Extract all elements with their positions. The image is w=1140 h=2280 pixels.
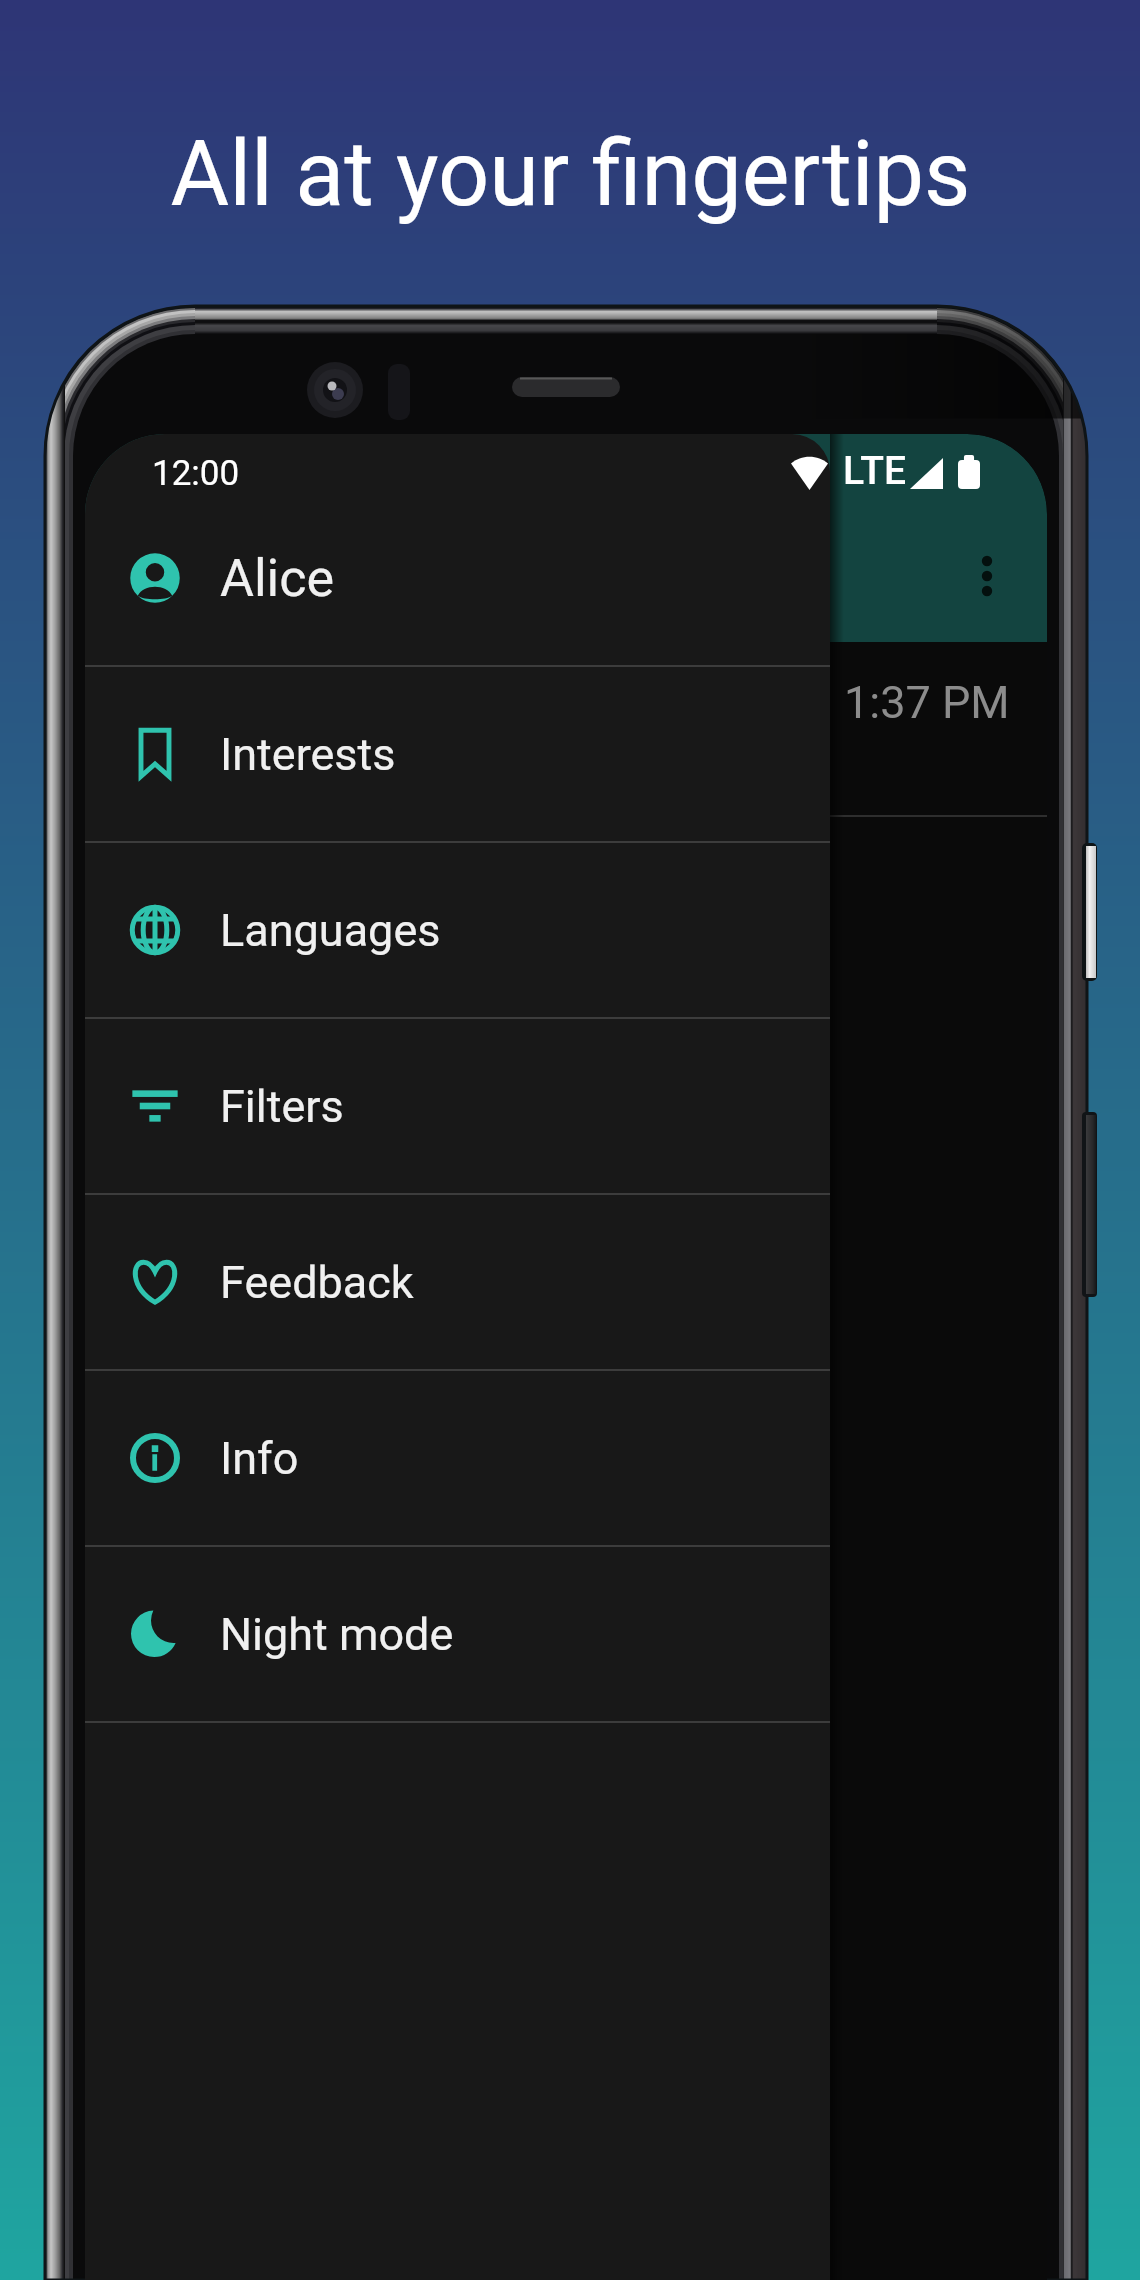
staticText: Languages — [220, 904, 441, 957]
staticText: Feedback — [220, 1256, 414, 1309]
button[interactable]: Languages — [85, 843, 830, 1017]
staticText: Night mode — [220, 1608, 454, 1661]
button[interactable]: Feedback — [85, 1195, 830, 1369]
staticText: Interests — [220, 728, 396, 781]
button[interactable]: More options — [942, 531, 1032, 621]
staticText: All at your fingertips — [170, 122, 971, 227]
staticText: 12:00 — [152, 453, 240, 494]
button[interactable]: Alice — [85, 491, 830, 665]
staticText: Filters — [220, 1080, 344, 1133]
button[interactable]: Interests — [85, 667, 830, 841]
staticText: LTE — [843, 448, 906, 494]
staticText: 1:37 PM — [844, 676, 1010, 729]
button[interactable]: Info — [85, 1371, 830, 1545]
staticText: Info — [220, 1432, 299, 1485]
staticText: Alice — [220, 548, 335, 609]
button[interactable]: Night mode — [85, 1547, 830, 1721]
button[interactable]: Filters — [85, 1019, 830, 1193]
